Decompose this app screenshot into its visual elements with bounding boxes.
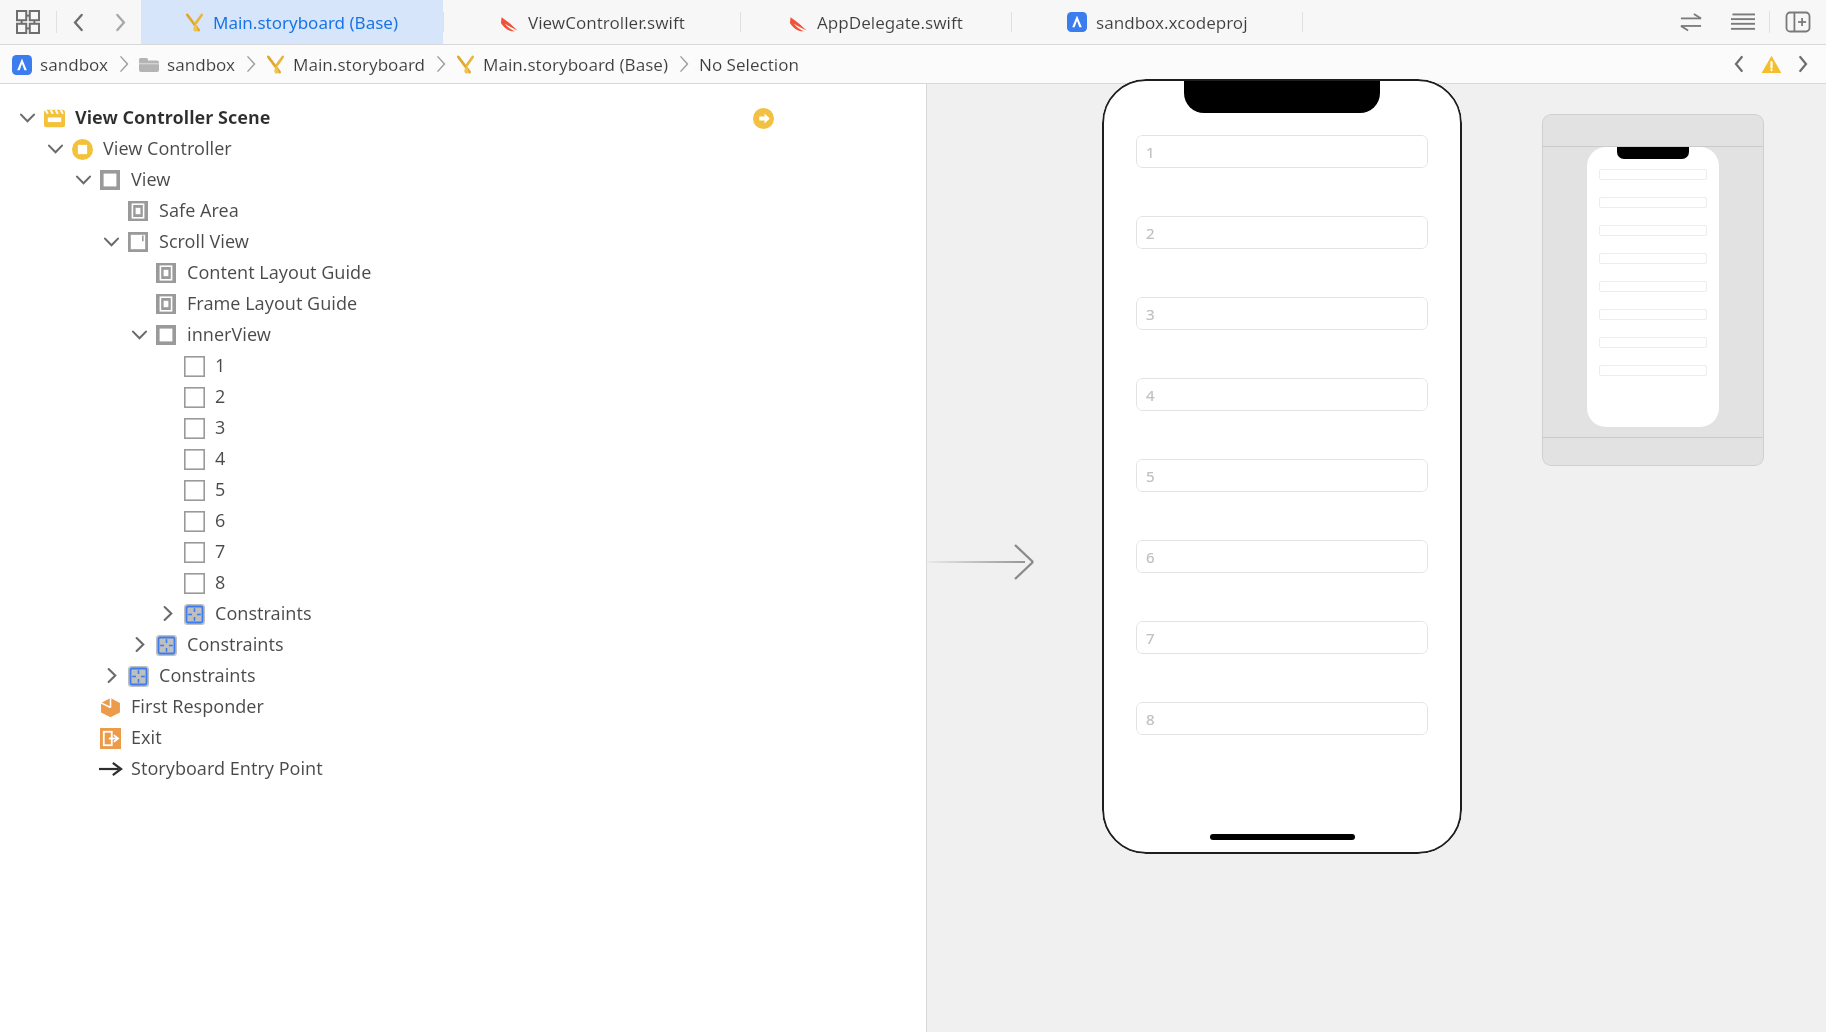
staticText: 6	[1146, 547, 1155, 567]
staticText: Exit	[131, 725, 162, 750]
button[interactable]: 3	[1136, 297, 1428, 330]
button[interactable]: No Selection	[699, 53, 799, 76]
button[interactable]: 1	[1102, 79, 1462, 854]
staticText: innerView	[187, 322, 271, 347]
button[interactable]: AppDelegate.swift	[741, 0, 1011, 44]
staticText: Frame Layout Guide	[187, 291, 358, 316]
staticText: 7	[1146, 628, 1155, 648]
staticText: View Controller	[103, 136, 232, 161]
button[interactable]: Scroll View	[0, 226, 926, 257]
button[interactable]: 6	[1136, 540, 1428, 573]
button[interactable]: sandbox	[12, 53, 109, 76]
button[interactable]: Safe Area	[0, 195, 926, 226]
staticText: 6	[215, 508, 226, 533]
button[interactable]: 1	[0, 350, 926, 381]
staticText: 8	[1146, 709, 1155, 729]
button[interactable]: innerView	[0, 319, 926, 350]
staticText: Constraints	[159, 663, 256, 688]
staticText: Safe Area	[159, 198, 239, 223]
button[interactable]: Constraints	[0, 629, 926, 660]
button[interactable]: Content Layout Guide	[0, 257, 926, 288]
button[interactable]: Adjust editor options	[1665, 0, 1717, 44]
button[interactable]: 8	[1136, 702, 1428, 735]
button[interactable]: Exit	[0, 722, 926, 753]
staticText: 3	[1146, 304, 1155, 324]
button[interactable]: Previous issue	[1722, 45, 1756, 83]
button[interactable]	[1542, 114, 1764, 466]
staticText: Constraints	[215, 601, 312, 626]
button[interactable]: sandbox	[139, 53, 236, 76]
button[interactable]: First Responder	[0, 691, 926, 722]
button[interactable]: ViewController.swift	[444, 0, 740, 44]
button[interactable]: Main.storyboard (Base)	[456, 53, 669, 76]
button[interactable]: 2	[1136, 216, 1428, 249]
button[interactable]: Frame Layout Guide	[0, 288, 926, 319]
button[interactable]: 4	[0, 443, 926, 474]
button[interactable]: Show navigator	[0, 0, 56, 44]
staticText: 8	[215, 570, 226, 595]
staticText: Main.storyboard (Base)	[213, 11, 399, 34]
staticText: 2	[1146, 223, 1155, 243]
button[interactable]: Main.storyboard (Base)	[141, 0, 443, 44]
button[interactable]: Next issue	[1786, 45, 1820, 83]
button[interactable]: View	[0, 164, 926, 195]
button[interactable]: 1	[1136, 135, 1428, 168]
button[interactable]: 4	[1136, 378, 1428, 411]
button[interactable]: Minimap	[1717, 0, 1769, 44]
button[interactable]: View Controller Scene	[0, 102, 926, 133]
staticText: 4	[215, 446, 226, 471]
staticText: sandbox	[40, 53, 109, 76]
button[interactable]: Constraints	[0, 660, 926, 691]
staticText: Main.storyboard (Base)	[483, 53, 669, 76]
button[interactable]: Issues	[1756, 45, 1786, 83]
button[interactable]: View Controller	[0, 133, 926, 164]
staticText: Content Layout Guide	[187, 260, 372, 285]
button[interactable]: Forward	[99, 0, 141, 44]
staticText: 4	[1146, 385, 1155, 405]
staticText: Scroll View	[159, 229, 249, 254]
button[interactable]: 7	[0, 536, 926, 567]
staticText: 3	[215, 415, 226, 440]
staticText: AppDelegate.swift	[817, 11, 963, 34]
staticText: Storyboard Entry Point	[131, 756, 323, 781]
button[interactable]: 2	[0, 381, 926, 412]
staticText: 5	[215, 477, 226, 502]
button[interactable]: Storyboard Entry Point	[0, 753, 926, 784]
staticText: Main.storyboard	[293, 53, 426, 76]
button[interactable]: 5	[1136, 459, 1428, 492]
button[interactable]: 5	[0, 474, 926, 505]
staticText: First Responder	[131, 694, 264, 719]
button[interactable]: 8	[0, 567, 926, 598]
staticText: 1	[1146, 142, 1155, 162]
staticText: 1	[215, 353, 226, 378]
button[interactable]: Constraints	[0, 598, 926, 629]
button[interactable]: Back	[57, 0, 99, 44]
staticText: Constraints	[187, 632, 284, 657]
button[interactable]: 6	[0, 505, 926, 536]
staticText: sandbox.xcodeproj	[1096, 11, 1248, 34]
button[interactable]: Add editor	[1770, 0, 1826, 44]
staticText: ViewController.swift	[528, 11, 685, 34]
staticText: 7	[215, 539, 226, 564]
staticText: View Controller Scene	[75, 105, 271, 130]
staticText: sandbox	[167, 53, 236, 76]
staticText: 5	[1146, 466, 1155, 486]
button[interactable]: 7	[1136, 621, 1428, 654]
button[interactable]: sandbox.xcodeproj	[1012, 0, 1302, 44]
button[interactable]: Scene entry point	[752, 107, 774, 129]
button[interactable]: 3	[0, 412, 926, 443]
button[interactable]: Main.storyboard	[266, 53, 426, 76]
staticText: View	[131, 167, 171, 192]
staticText: 2	[215, 384, 226, 409]
